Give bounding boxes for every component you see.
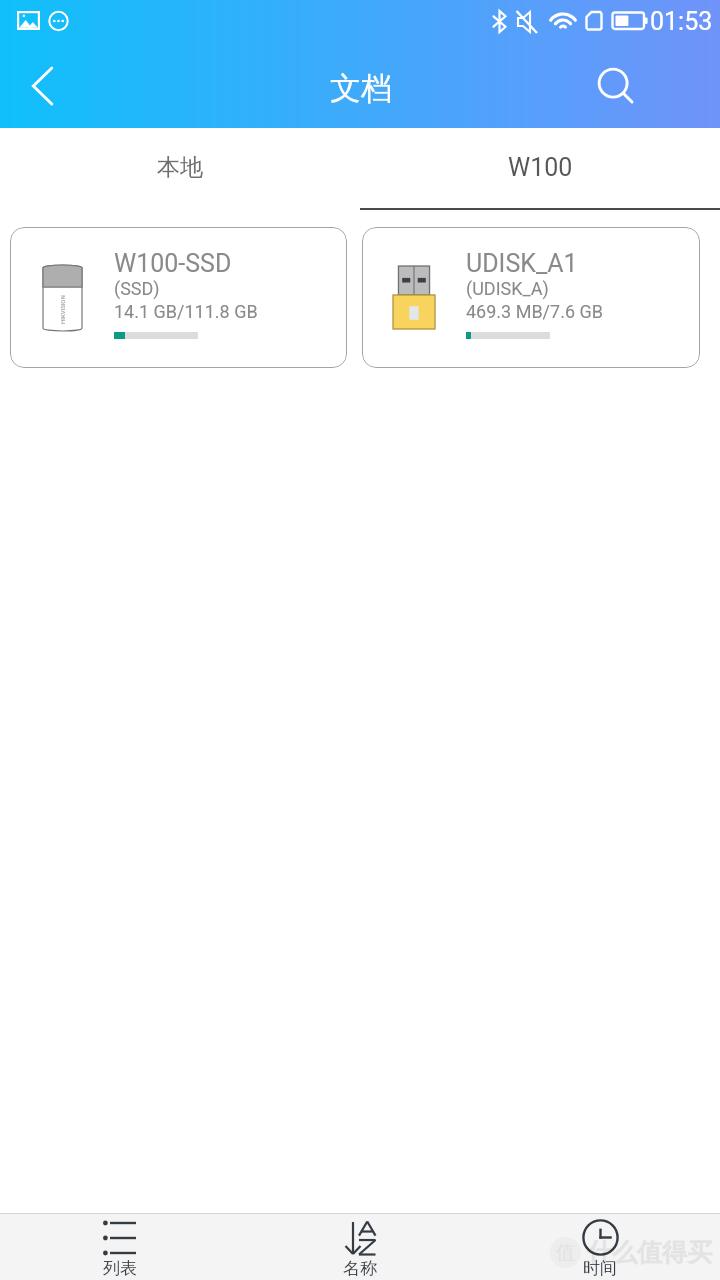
staticText: 469.3 MB/7.6 GB bbox=[466, 301, 603, 322]
button[interactable]: 列表 bbox=[0, 1214, 240, 1280]
staticText: 什么值得买 bbox=[587, 1237, 712, 1268]
button[interactable]: 本地 bbox=[0, 128, 360, 210]
staticText: 值 bbox=[556, 1241, 575, 1265]
staticText: 本地 bbox=[157, 153, 203, 182]
staticText: 14.1 GB/111.8 GB bbox=[114, 301, 258, 322]
staticText: 时间 bbox=[583, 1258, 617, 1279]
button[interactable]: Search bbox=[586, 56, 646, 116]
staticText: 列表 bbox=[103, 1258, 137, 1279]
staticText: 名称 bbox=[343, 1258, 377, 1279]
button[interactable]: Back bbox=[10, 53, 76, 119]
staticText: UDISK_A1 bbox=[466, 249, 578, 278]
button[interactable]: 名称 bbox=[240, 1214, 480, 1280]
button[interactable]: 时间 bbox=[480, 1214, 720, 1280]
staticText: 文档 bbox=[330, 69, 392, 108]
staticText: HIKVISION bbox=[59, 295, 66, 324]
staticText: (UDISK_A) bbox=[466, 278, 549, 299]
staticText: W100 bbox=[508, 153, 573, 182]
button[interactable]: W100 bbox=[360, 128, 720, 210]
staticText: (SSD) bbox=[114, 278, 160, 299]
button[interactable]: UDISK_A1 bbox=[362, 227, 700, 368]
button[interactable]: HIKVISION bbox=[10, 227, 347, 368]
staticText: W100-SSD bbox=[114, 249, 232, 278]
staticText: 01:53 bbox=[650, 7, 713, 36]
